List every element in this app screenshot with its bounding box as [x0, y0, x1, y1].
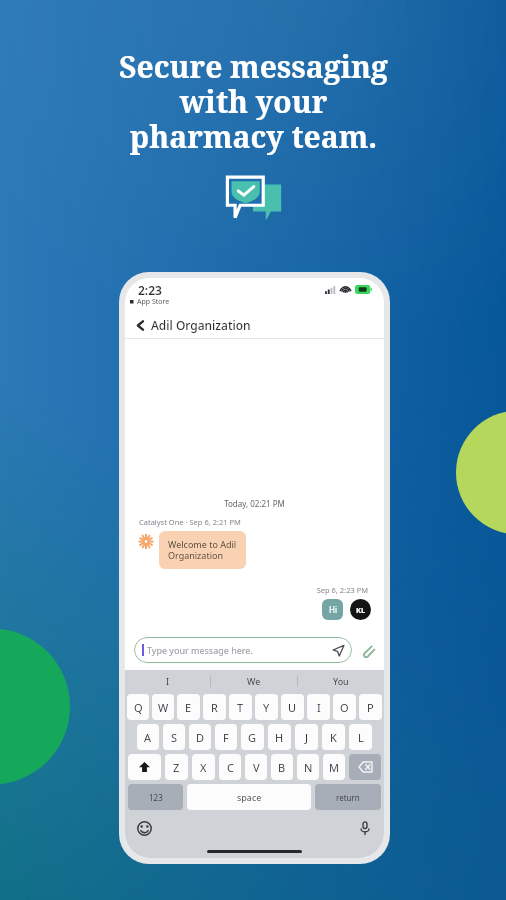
staticText: You [333, 675, 349, 687]
button[interactable]: Welcome to Adil Organization [159, 531, 246, 569]
staticText: M [329, 760, 339, 775]
staticText: F [223, 730, 229, 745]
staticText: G [248, 730, 257, 745]
staticText: We [247, 675, 261, 687]
button[interactable]: M [323, 754, 345, 780]
button[interactable]: We [211, 670, 297, 692]
staticText: space [237, 791, 262, 803]
button[interactable]: return [315, 784, 381, 810]
staticText: return [336, 792, 360, 803]
button[interactable]: 123 [128, 784, 183, 810]
button[interactable]: A [137, 724, 159, 750]
staticText: Adil Organization [151, 317, 251, 333]
staticText: P [367, 700, 374, 715]
button[interactable]: U [281, 694, 304, 720]
button[interactable]: D [189, 724, 211, 750]
button[interactable]: Shift [128, 754, 161, 780]
staticText: D [196, 730, 205, 745]
staticText: Z [173, 760, 180, 775]
staticText: 2:23 [138, 282, 162, 298]
staticText: Today, 02:21 PM [125, 498, 384, 509]
staticText: I [166, 675, 170, 687]
staticText: I [317, 700, 321, 715]
button[interactable]: space [187, 784, 311, 810]
staticText: H [275, 730, 284, 745]
button[interactable]: KL [350, 599, 371, 620]
button[interactable]: Attach file [360, 643, 375, 658]
button[interactable]: Hi [322, 599, 343, 620]
staticText: N [304, 760, 313, 775]
staticText: E [185, 700, 192, 715]
button[interactable]: Back [125, 312, 384, 338]
staticText: Hi [329, 604, 337, 615]
staticText: B [278, 760, 286, 775]
button[interactable]: P [359, 694, 382, 720]
button[interactable]: Type your message here. [134, 637, 352, 663]
staticText: X [200, 760, 207, 775]
staticText: Secure messaging with your pharmacy team… [119, 46, 388, 157]
button[interactable]: N [297, 754, 319, 780]
staticText: Q [134, 700, 143, 715]
button[interactable]: I [307, 694, 330, 720]
staticText: Catalyst One · Sep 6, 2:21 PM [139, 517, 241, 527]
button[interactable]: E [177, 694, 200, 720]
other: Send [332, 644, 345, 657]
button[interactable]: Y [255, 694, 278, 720]
button[interactable]: F [215, 724, 237, 750]
staticText: V [253, 760, 260, 775]
button[interactable]: X [192, 754, 215, 780]
staticText: 123 [149, 792, 163, 803]
staticText: KL [356, 605, 366, 615]
staticText: W [158, 700, 169, 715]
staticText: R [211, 700, 218, 715]
button[interactable]: I [125, 670, 210, 692]
button[interactable]: Z [165, 754, 188, 780]
staticText: A [144, 730, 152, 745]
button[interactable]: W [152, 694, 174, 720]
staticText: Welcome to Adil Organization [168, 538, 237, 562]
button[interactable]: G [241, 724, 264, 750]
button[interactable]: Emoji [137, 821, 152, 836]
button[interactable]: Dictation [358, 821, 372, 835]
staticText: Type your message here. [147, 644, 332, 656]
staticText: K [330, 730, 337, 745]
staticText: T [237, 700, 244, 715]
other: Back [135, 320, 146, 331]
staticText: L [358, 730, 364, 745]
staticText: J [305, 730, 309, 745]
staticText: Y [263, 700, 270, 715]
staticText: C [227, 760, 234, 775]
staticText: U [288, 700, 297, 715]
button[interactable]: J [295, 724, 318, 750]
staticText: App Store [137, 297, 170, 307]
button[interactable]: R [203, 694, 226, 720]
button[interactable]: C [219, 754, 241, 780]
staticText: O [340, 700, 349, 715]
button[interactable]: You [298, 670, 384, 692]
button[interactable]: S [163, 724, 185, 750]
button[interactable]: H [268, 724, 291, 750]
staticText: S [171, 730, 178, 745]
button[interactable]: Q [127, 694, 149, 720]
button[interactable]: T [229, 694, 252, 720]
staticText: Sep 6, 2:23 PM [125, 585, 368, 595]
button[interactable]: L [349, 724, 372, 750]
button[interactable]: B [271, 754, 293, 780]
button[interactable]: V [245, 754, 267, 780]
button[interactable]: K [322, 724, 345, 750]
button[interactable]: Backspace [349, 754, 381, 780]
button[interactable]: O [333, 694, 356, 720]
